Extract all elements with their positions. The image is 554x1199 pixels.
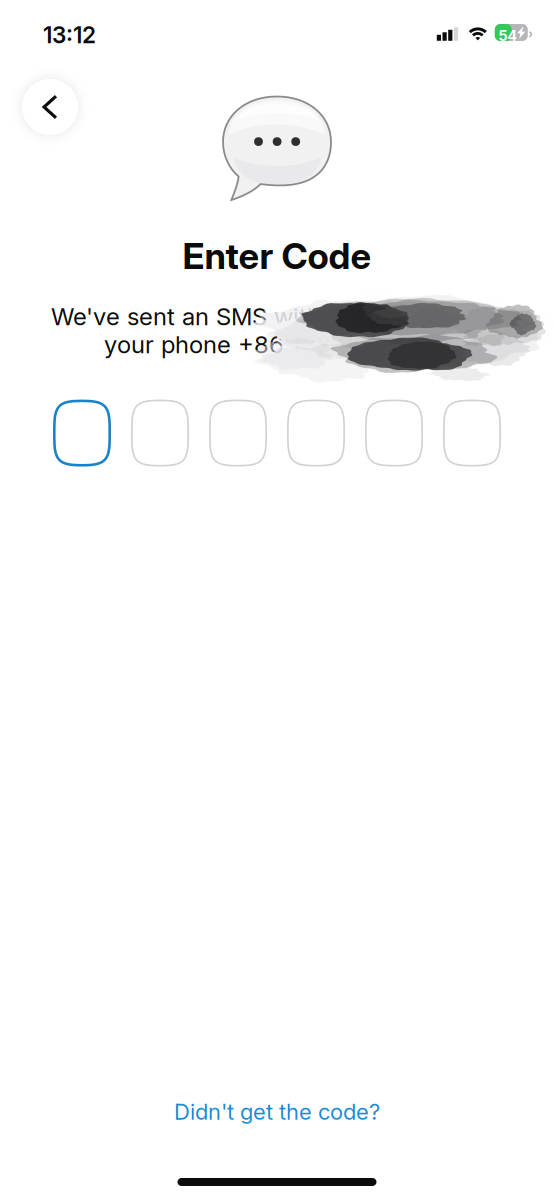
staticText: We've sent an SMS with a code to verify (51, 302, 503, 331)
button[interactable]: Code digit 5 (365, 400, 423, 467)
button[interactable]: Code digit 6 (443, 400, 501, 467)
staticText: Didn't get the code? (174, 1098, 380, 1125)
button[interactable]: Code digit 4 (287, 400, 345, 467)
button[interactable]: Code digit 2 (131, 400, 189, 467)
staticText: your phone +86 138 0000 000 (104, 330, 450, 359)
staticText: 13:12 (43, 21, 96, 49)
button[interactable]: Code digit 1 (53, 400, 111, 467)
button[interactable]: Code digit 3 (209, 400, 267, 467)
button[interactable]: Back (9, 66, 91, 148)
staticText: 54 (498, 27, 517, 44)
button[interactable]: Didn't get the code? (156, 1089, 398, 1134)
staticText: Enter Code (182, 234, 371, 278)
